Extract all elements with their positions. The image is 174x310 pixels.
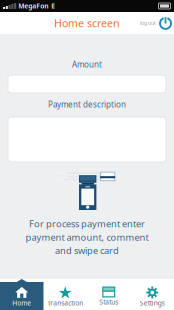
- staticText: E: [51, 2, 55, 10]
- staticText: and swipe card: [55, 244, 119, 257]
- button[interactable]: Transaction: [43, 279, 87, 310]
- staticText: payment amount, comment: [25, 231, 148, 243]
- button[interactable]: log out: [138, 13, 173, 33]
- staticText: Home screen: [54, 16, 120, 30]
- staticText: Home: [12, 298, 31, 307]
- button[interactable]: Status: [87, 279, 130, 310]
- button[interactable]: Settings: [130, 279, 174, 310]
- staticText: Status: [99, 297, 118, 306]
- staticText: Transaction: [47, 298, 83, 307]
- button[interactable]: Home: [0, 279, 43, 310]
- staticText: log out: [140, 19, 156, 27]
- staticText: Settings: [140, 298, 165, 307]
- staticText: Payment description: [48, 99, 126, 110]
- staticText: For process payment enter: [29, 217, 145, 230]
- staticText: Amount: [72, 59, 102, 70]
- staticText: MegaFon: [18, 2, 48, 10]
